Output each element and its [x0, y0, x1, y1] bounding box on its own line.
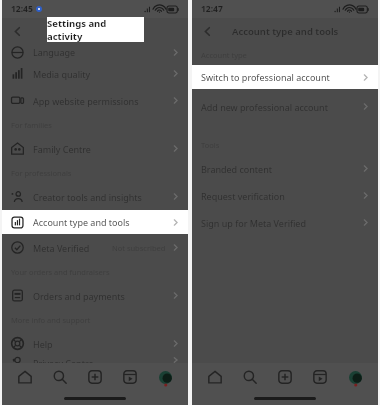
button[interactable]: Sign up for Meta Verified	[192, 209, 378, 236]
staticText: Settings and activity	[47, 17, 144, 42]
staticText: Account type	[201, 50, 247, 60]
staticText: Privacy Centre	[33, 357, 94, 363]
staticText: For families	[11, 120, 52, 130]
staticText: Branded content	[201, 163, 272, 175]
button[interactable]: Home	[203, 365, 227, 389]
staticText: Help	[33, 338, 53, 350]
staticText: Language	[33, 46, 76, 58]
staticText: Account type and tools	[33, 216, 130, 228]
button[interactable]: Home	[13, 365, 37, 389]
button[interactable]: Back	[7, 21, 27, 41]
staticText: Family Centre	[33, 143, 91, 155]
button[interactable]: Create	[83, 365, 107, 389]
button[interactable]: Help	[2, 330, 188, 357]
staticText: Switch to professional account	[201, 71, 330, 83]
button[interactable]: Reels	[308, 365, 332, 389]
staticText: Media quality	[33, 68, 91, 80]
button[interactable]: Profile	[343, 365, 367, 389]
staticText: Sign up for Meta Verified	[201, 217, 306, 229]
button[interactable]: Creator tools and insights	[2, 183, 188, 210]
button[interactable]: Search	[238, 365, 262, 389]
button[interactable]: Add new professional account	[192, 93, 378, 120]
button[interactable]: Back	[197, 21, 217, 41]
button[interactable]: Reels	[118, 365, 142, 389]
staticText: For professionals	[11, 168, 72, 178]
button[interactable]: Family Centre	[2, 135, 188, 162]
staticText: Tools	[201, 140, 220, 150]
staticText: Your orders and fundraisers	[11, 267, 110, 277]
button[interactable]: Meta Verified	[2, 234, 188, 261]
staticText: More info and support	[11, 315, 91, 325]
button[interactable]: App website permissions	[2, 87, 188, 114]
button[interactable]: Language	[2, 44, 188, 60]
button[interactable]: Branded content	[192, 155, 378, 182]
staticText: Account type and tools	[232, 25, 339, 38]
button[interactable]: Create	[273, 365, 297, 389]
staticText: Orders and payments	[33, 290, 125, 302]
button[interactable]: Switch to professional account	[192, 65, 378, 89]
staticText: Creator tools and insights	[33, 191, 142, 203]
button[interactable]: Account type and tools	[2, 210, 188, 234]
staticText: Add new professional account	[201, 101, 328, 113]
staticText: 12:45	[11, 3, 33, 15]
button[interactable]: Media quality	[2, 60, 188, 87]
button[interactable]: Search	[48, 365, 72, 389]
button[interactable]: Orders and payments	[2, 282, 188, 309]
staticText: Meta Verified	[33, 242, 90, 254]
button[interactable]: Profile	[153, 365, 177, 389]
staticText: Not subscribed	[112, 243, 166, 253]
button[interactable]: Request verification	[192, 182, 378, 209]
staticText: App website permissions	[33, 95, 139, 107]
button[interactable]: Privacy Centre	[2, 357, 188, 363]
staticText: Request verification	[201, 190, 285, 202]
staticText: 12:47	[201, 3, 223, 15]
